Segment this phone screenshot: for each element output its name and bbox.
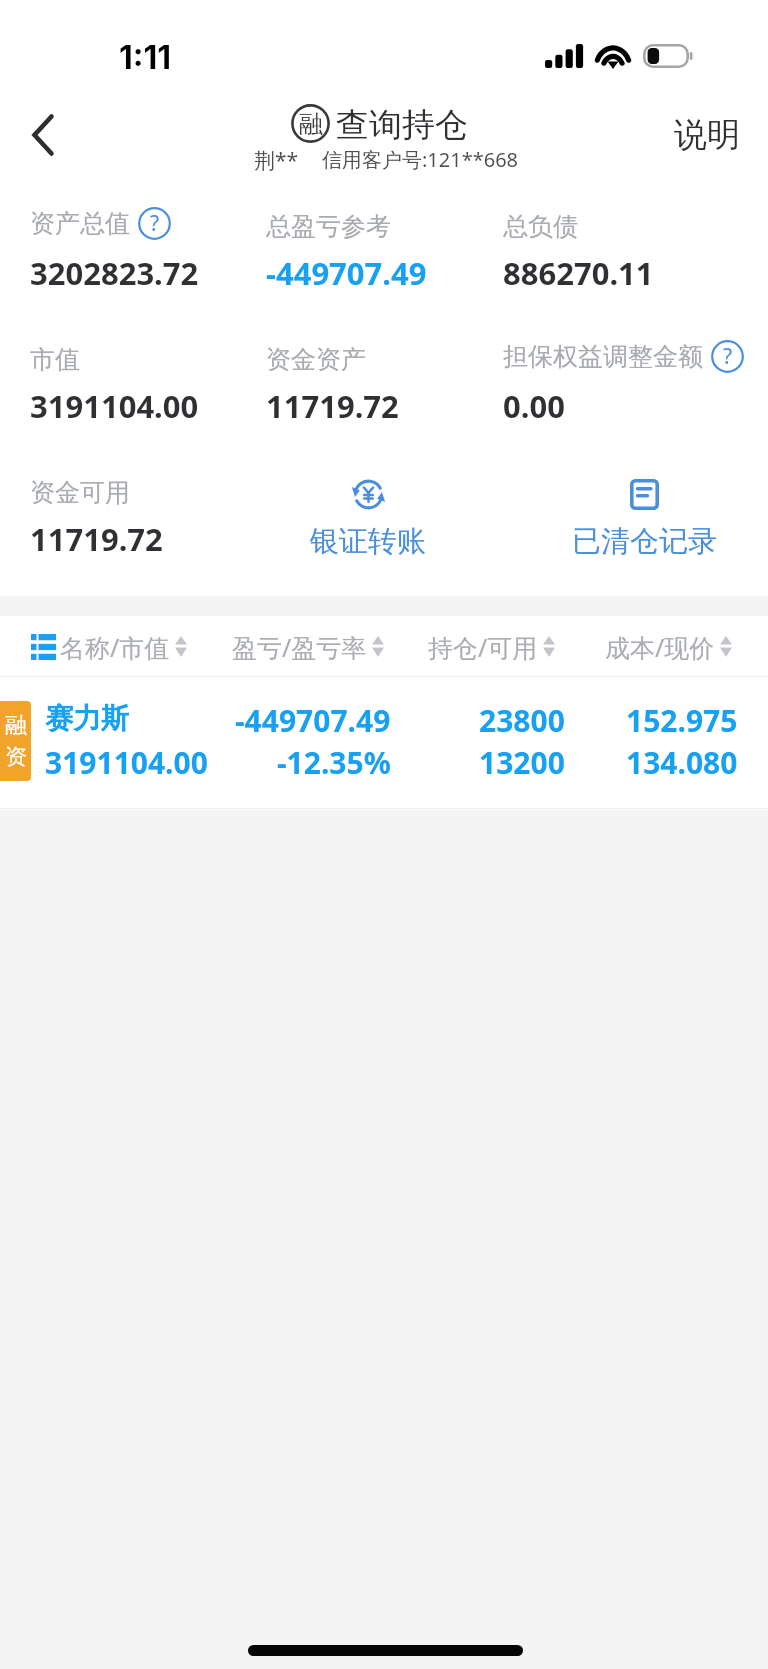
staticText: 赛力斯 [45,701,129,736]
staticText: 3191104.00 [30,385,199,427]
staticText: 资 [5,743,27,771]
staticText: 总盈亏参考 [266,211,391,242]
staticText: 11719.72 [30,518,163,560]
staticText: -12.35% [277,742,391,783]
staticText: 3191104.00 [45,742,208,783]
button[interactable]: Back [3,95,83,175]
staticText: -449707.49 [235,700,391,741]
staticText: 资金可用 [30,477,130,508]
staticText: 成本/现价 [605,630,715,662]
staticText: ? [150,209,160,238]
button[interactable]: 盈亏/盈亏率 [232,630,384,662]
staticText: 已清仓记录 [572,523,717,560]
staticText: 信用客户号:121**668 [322,146,519,173]
staticText: 查询持仓 [336,104,468,146]
staticText: 融 [5,712,27,740]
staticText: 152.975 [626,700,738,741]
staticText: 1:11 [119,38,172,77]
button[interactable]: 已清仓记录 [551,479,737,560]
staticText: 134.080 [626,742,738,783]
button[interactable]: 持仓/可用 [428,630,555,662]
staticText: 名称/市值 [60,630,170,662]
staticText: 银证转账 [310,523,426,560]
button[interactable]: 成本/现价 [605,630,732,662]
staticText: 担保权益调整金额 [503,341,703,372]
staticText: 荆** [254,146,299,175]
staticText: 说明 [674,114,740,156]
staticText: 市值 [30,344,80,375]
button[interactable]: 融 [0,675,768,802]
staticText: 11719.72 [266,385,399,427]
button[interactable]: 名称/市值 [60,630,187,662]
staticText: 0.00 [503,385,565,427]
staticText: -449707.49 [266,252,427,294]
staticText: 总负债 [503,211,578,242]
staticText: 3202823.72 [30,252,199,294]
staticText: ? [723,342,733,371]
staticText: 盈亏/盈亏率 [232,630,367,662]
staticText: 融 [299,109,323,139]
button[interactable]: 银证转账 [290,479,446,560]
staticText: 资产总值 [30,208,130,239]
staticText: 持仓/可用 [428,630,538,662]
staticText: 886270.11 [503,252,654,294]
staticText: 13200 [479,742,565,783]
button[interactable]: 说明 [659,95,755,175]
staticText: 23800 [479,700,565,741]
staticText: 资金资产 [266,344,366,375]
